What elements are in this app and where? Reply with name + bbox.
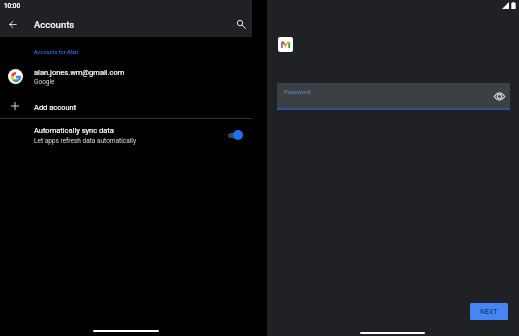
staticText: Accounts: [34, 19, 75, 30]
staticText: 10:00: [4, 2, 20, 9]
staticText: Accounts for Alan: [34, 49, 79, 55]
staticText: NEXT: [480, 308, 498, 316]
staticText: Password: [284, 88, 311, 95]
button[interactable]: Show password: [493, 90, 505, 102]
staticText: Add account: [34, 103, 77, 112]
staticText: Google: [34, 78, 55, 86]
button[interactable]: alan.jones.wm@gmail.com: [0, 62, 252, 94]
button[interactable]: Add account: [0, 95, 252, 118]
button[interactable]: Search: [229, 12, 253, 36]
staticText: Automatically sync data: [34, 126, 114, 135]
button[interactable]: Navigate up: [1, 12, 25, 36]
button[interactable]: Automatically sync data: [0, 119, 252, 148]
button[interactable]: NEXT: [470, 303, 508, 320]
staticText: alan.jones.wm@gmail.com: [34, 68, 125, 77]
staticText: Let apps refresh data automatically: [34, 137, 136, 145]
